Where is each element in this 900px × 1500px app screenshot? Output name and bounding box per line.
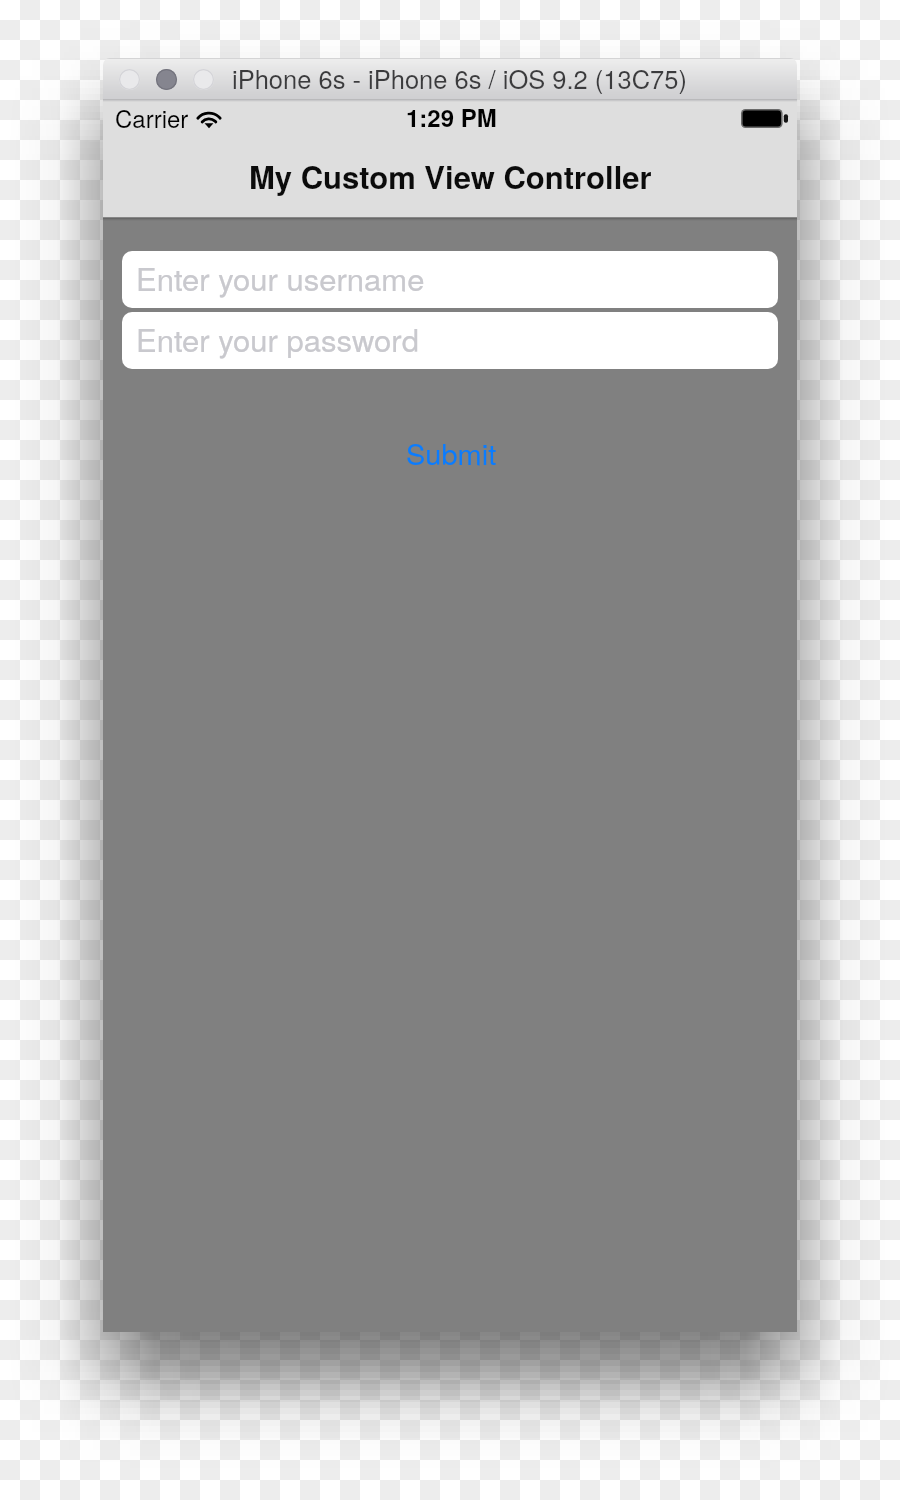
staticText: 1:29 PM bbox=[406, 100, 497, 134]
button[interactable]: Enter your password bbox=[122, 312, 778, 369]
other: Battery bbox=[741, 109, 788, 128]
staticText: Submit bbox=[406, 432, 497, 474]
button[interactable]: Minimise window bbox=[156, 69, 177, 90]
staticText: Carrier bbox=[115, 100, 189, 134]
staticText: Enter your password bbox=[136, 316, 419, 360]
button[interactable]: Enter your username bbox=[122, 251, 778, 308]
staticText: My Custom View Controller bbox=[249, 154, 652, 198]
button[interactable]: Zoom window bbox=[193, 69, 214, 90]
button[interactable]: Close window bbox=[119, 69, 140, 90]
staticText: iPhone 6s - iPhone 6s / iOS 9.2 (13C75) bbox=[232, 60, 687, 97]
other: Wi-Fi bbox=[197, 109, 221, 128]
staticText: Enter your username bbox=[136, 255, 425, 299]
button[interactable]: Submit bbox=[390, 424, 513, 482]
